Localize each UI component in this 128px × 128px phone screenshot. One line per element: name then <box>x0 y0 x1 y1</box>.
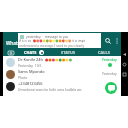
staticText: yesterday · message to you <box>26 35 69 39</box>
staticText: Photo <box>18 75 28 79</box>
staticText: if it is so <box>19 39 32 43</box>
button[interactable]: Back <box>121 51 128 58</box>
staticText: Yesterday 10:5 <box>18 63 42 67</box>
button[interactable]: CHATS <box>17 48 51 56</box>
button[interactable]: Sams Mpondo <box>3 68 121 80</box>
staticText: Umsebenzi wam ke futhi uma kudlala wo <box>18 87 82 91</box>
staticText: STATUS <box>61 50 76 55</box>
staticText: it is impt <box>72 39 85 43</box>
staticText: CHATS <box>24 50 37 55</box>
staticText: understand a message I send to you clear… <box>19 44 85 48</box>
button[interactable]: New chat <box>105 82 117 94</box>
button[interactable]: Search <box>102 35 113 46</box>
staticText: Yesterday <box>102 58 117 62</box>
button[interactable]: Camera <box>5 48 16 56</box>
button[interactable]: STATUS <box>51 48 86 56</box>
staticText: Yesterday <box>102 72 117 76</box>
button[interactable]: Dr Konile 24h <box>3 56 121 68</box>
staticText: Dr Konile 24h <box>18 57 44 62</box>
button[interactable]: +2348123456 <box>3 80 121 92</box>
staticText: Sams Mpondo <box>18 69 45 74</box>
button[interactable]: More options <box>111 35 122 46</box>
button[interactable]: Home <box>121 61 128 68</box>
staticText: WhatsApp <box>6 40 29 46</box>
button[interactable]: Recent apps <box>121 71 128 78</box>
button[interactable]: CALLS <box>86 48 121 56</box>
staticText: +2348123456 <box>18 81 43 86</box>
button[interactable]: yesterday · message to you <box>18 33 101 48</box>
staticText: CALLS <box>98 50 110 55</box>
